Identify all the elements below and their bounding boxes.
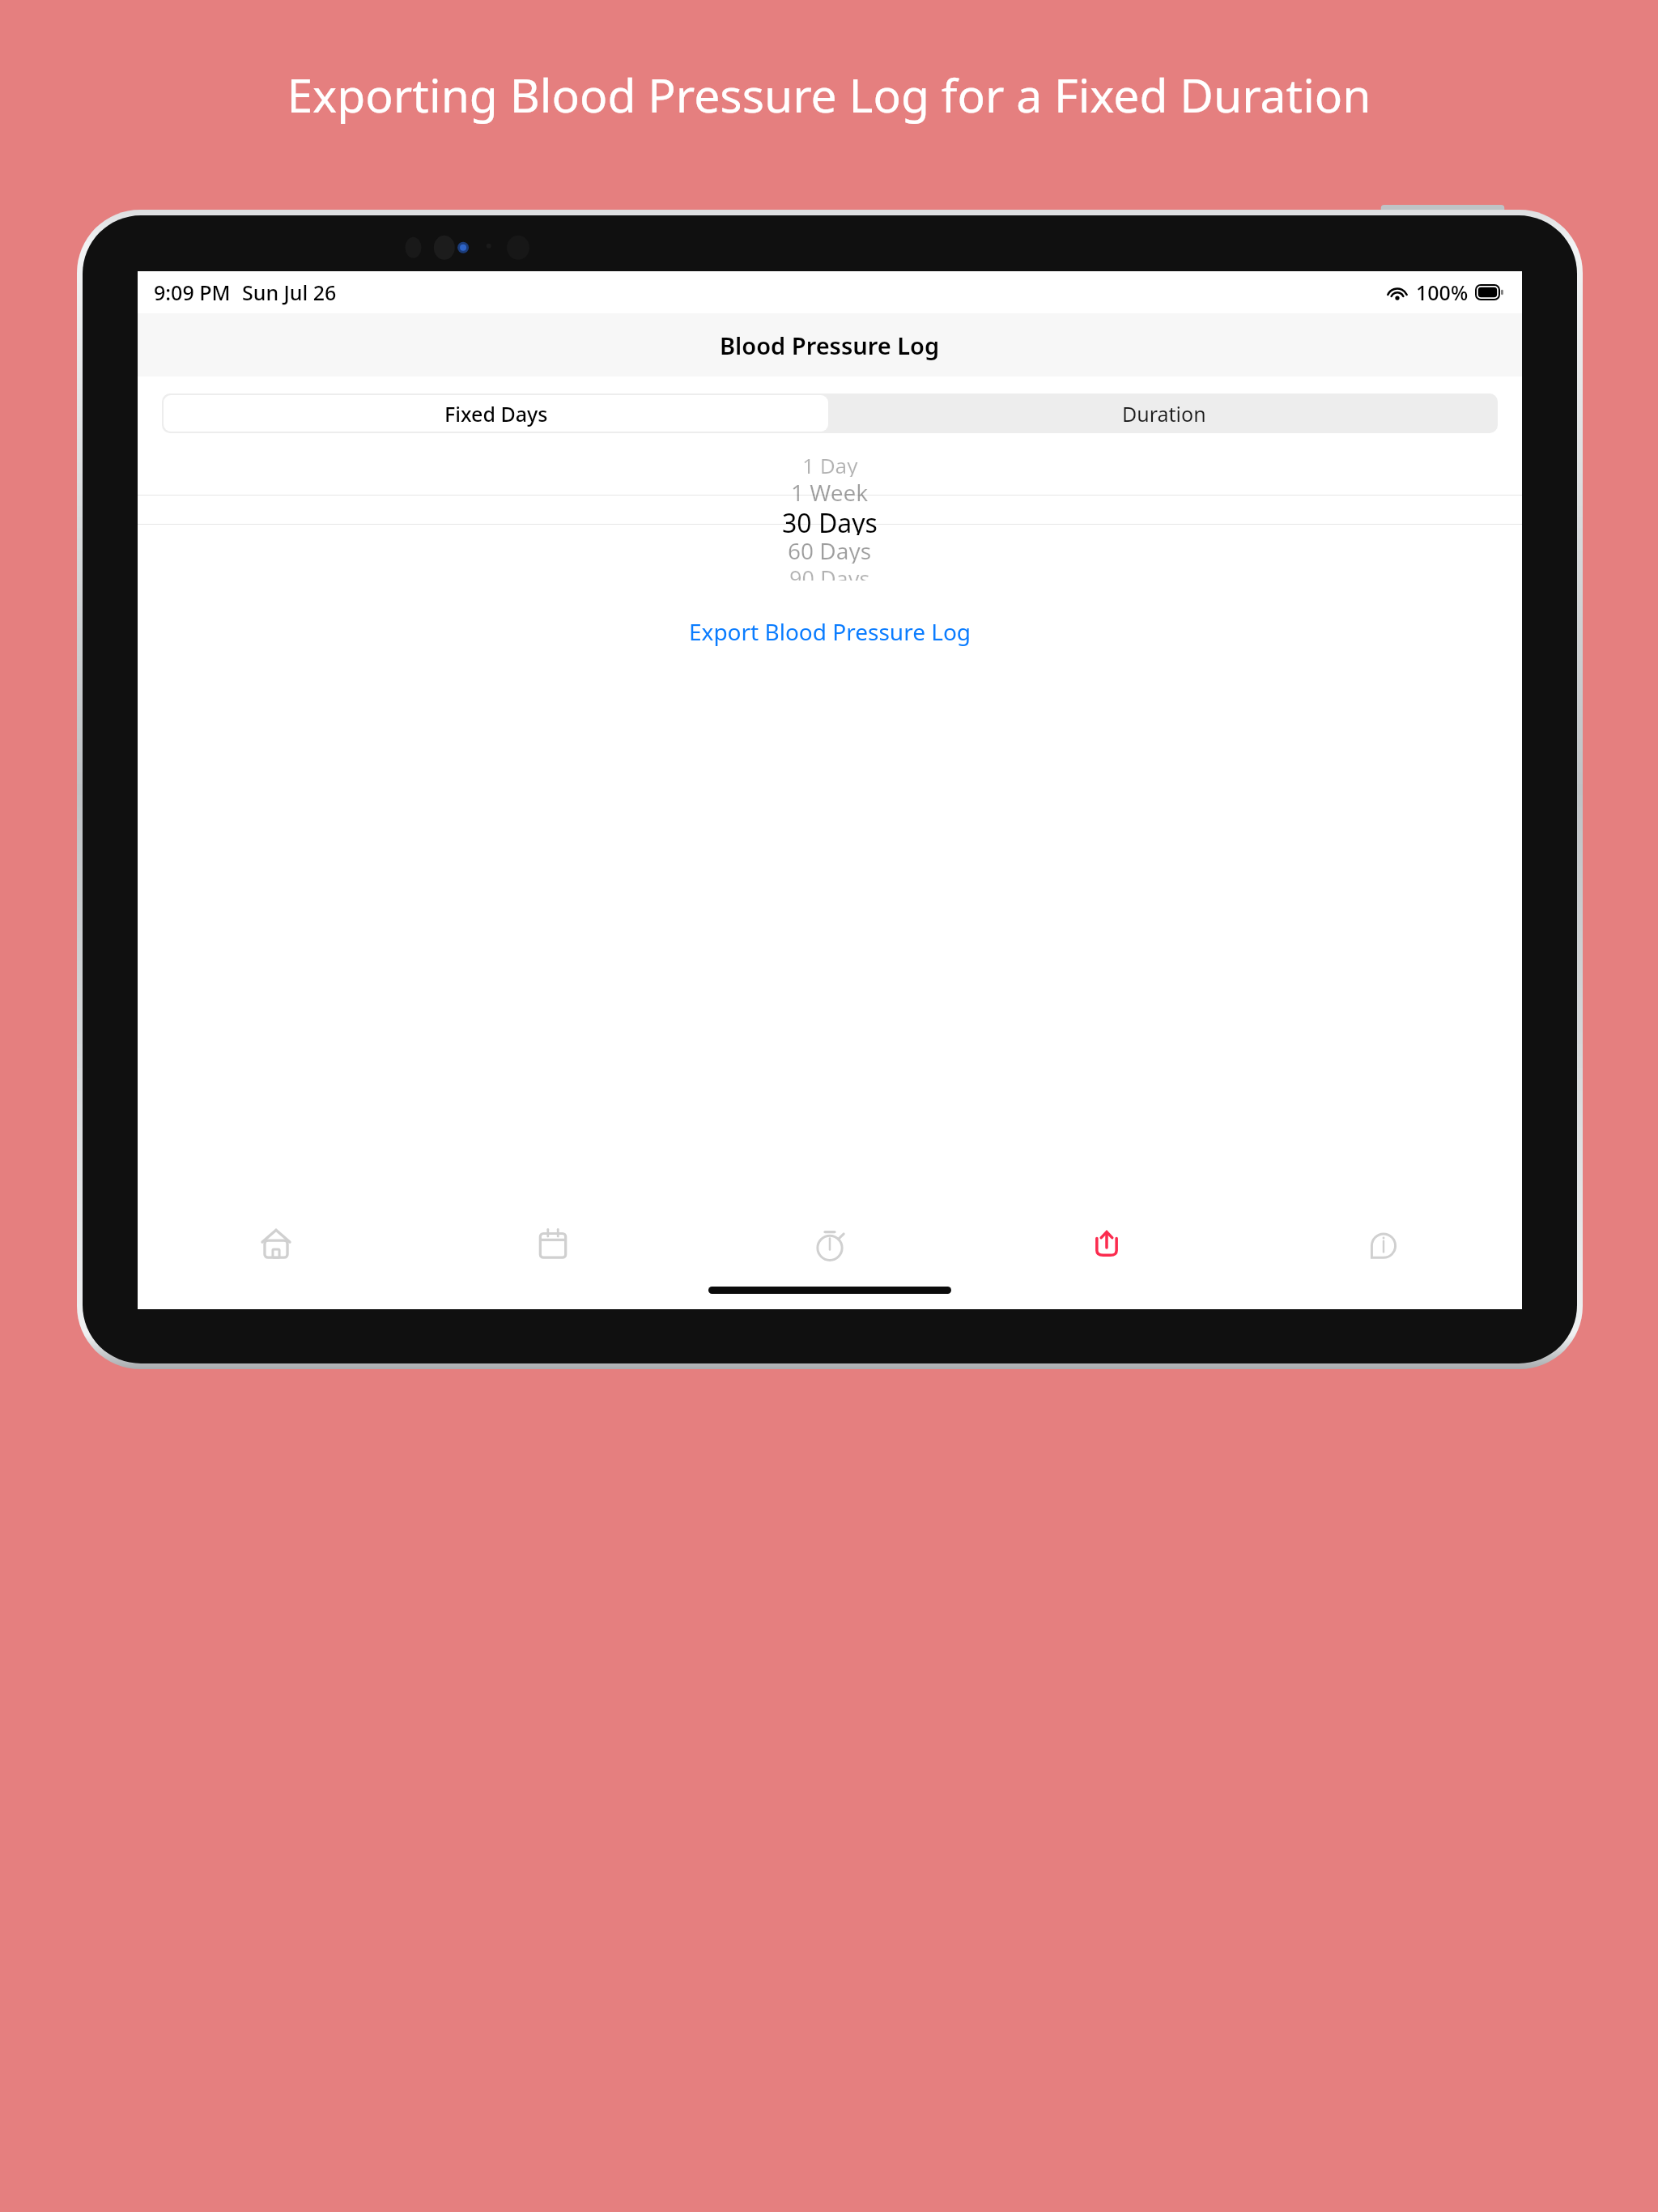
staticText: 9:09 PM xyxy=(154,279,231,306)
staticText: 60 Days xyxy=(788,535,872,564)
button[interactable]: Timer xyxy=(691,1209,968,1280)
staticText: Export Blood Pressure Log xyxy=(689,616,971,647)
button[interactable]: Info xyxy=(1245,1209,1522,1280)
button[interactable]: Fixed Days xyxy=(164,395,828,432)
button[interactable]: Export xyxy=(968,1209,1245,1280)
button[interactable]: Duration xyxy=(830,393,1498,433)
staticText: 100% xyxy=(1416,279,1469,306)
button[interactable]: 1 Day xyxy=(138,451,1522,581)
button[interactable]: Home xyxy=(138,1209,414,1280)
staticText: Exporting Blood Pressure Log for a Fixed… xyxy=(287,63,1371,126)
staticText: Fixed Days xyxy=(444,400,548,428)
staticText: 1 Day xyxy=(802,451,858,477)
staticText: 90 Days xyxy=(789,564,870,581)
staticText: Duration xyxy=(1122,400,1206,428)
button[interactable]: Export Blood Pressure Log xyxy=(670,610,991,653)
staticText: Blood Pressure Log xyxy=(720,330,940,361)
button[interactable]: Calendar xyxy=(414,1209,691,1280)
staticText: 30 Days xyxy=(782,505,878,535)
staticText: Sun Jul 26 xyxy=(242,279,337,306)
staticText: 1 Week xyxy=(791,477,869,505)
